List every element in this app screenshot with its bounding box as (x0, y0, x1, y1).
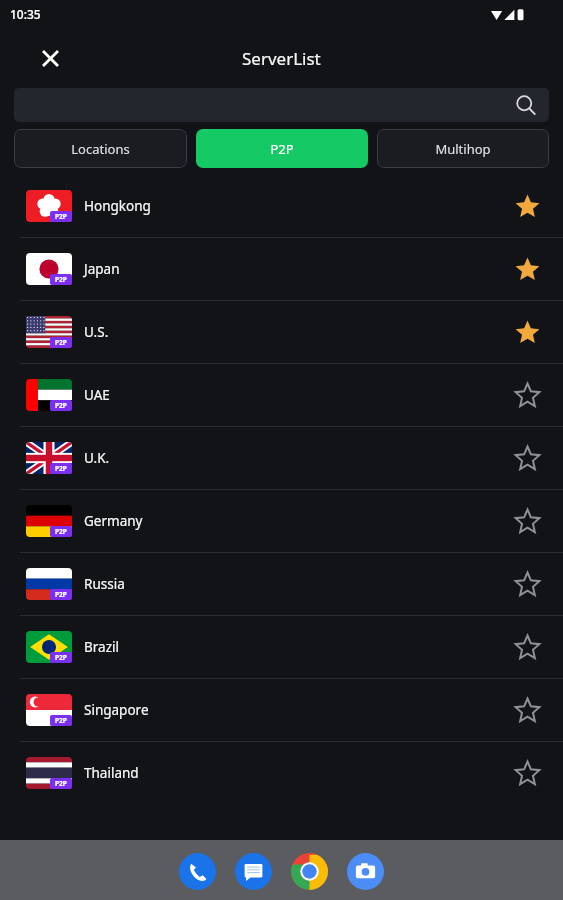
staticText: Germany (84, 512, 143, 530)
staticText: P2P (55, 653, 67, 662)
staticText: P2P (55, 464, 67, 473)
button[interactable]: Add favorite (505, 625, 549, 669)
button[interactable]: Remove favorite (505, 184, 549, 228)
button[interactable]: Close (30, 38, 70, 78)
button[interactable]: Multihop (377, 129, 549, 168)
staticText: P2P (270, 140, 294, 158)
button[interactable]: P2P (0, 616, 563, 678)
staticText: Locations (71, 140, 130, 158)
button[interactable]: Add favorite (505, 688, 549, 732)
button[interactable]: P2P (196, 129, 368, 168)
button[interactable]: Add favorite (505, 562, 549, 606)
button[interactable]: Locations (14, 129, 187, 168)
button[interactable]: P2P (0, 364, 563, 426)
staticText: Brazil (84, 638, 119, 656)
staticText: P2P (55, 212, 67, 221)
staticText: P2P (55, 779, 67, 788)
staticText: 10:35 (10, 6, 41, 22)
other: Search (515, 94, 537, 116)
staticText: U.K. (84, 449, 110, 467)
button[interactable]: Camera (347, 853, 384, 890)
button[interactable]: Search (14, 88, 549, 122)
staticText: Japan (84, 260, 120, 278)
button[interactable]: Remove favorite (505, 247, 549, 291)
button[interactable]: Add favorite (505, 373, 549, 417)
staticText: P2P (55, 716, 67, 725)
button[interactable]: Add favorite (505, 499, 549, 543)
staticText: U.S. (84, 323, 109, 341)
button[interactable]: P2P (0, 679, 563, 741)
button[interactable]: P2P (0, 553, 563, 615)
staticText: Thailand (84, 764, 139, 782)
button[interactable]: Messages (235, 853, 272, 890)
button[interactable]: P2P (0, 175, 563, 237)
staticText: P2P (55, 275, 67, 284)
staticText: Multihop (435, 140, 491, 158)
staticText: P2P (55, 527, 67, 536)
button[interactable]: Add favorite (505, 436, 549, 480)
button[interactable]: Remove favorite (505, 310, 549, 354)
staticText: P2P (55, 401, 67, 410)
staticText: Hongkong (84, 197, 151, 215)
staticText: Russia (84, 575, 125, 593)
button[interactable]: P2P (0, 301, 563, 363)
button[interactable]: Chrome (291, 853, 328, 890)
button[interactable]: Add favorite (505, 751, 549, 795)
button[interactable]: P2P (0, 238, 563, 300)
button[interactable]: P2P (0, 427, 563, 489)
staticText: P2P (55, 590, 67, 599)
button[interactable]: P2P (0, 490, 563, 552)
staticText: Singapore (84, 701, 149, 719)
staticText: UAE (84, 386, 110, 404)
staticText: P2P (55, 338, 67, 347)
button[interactable]: Phone (179, 853, 216, 890)
button[interactable]: P2P (0, 742, 563, 804)
staticText: ServerList (242, 47, 321, 70)
